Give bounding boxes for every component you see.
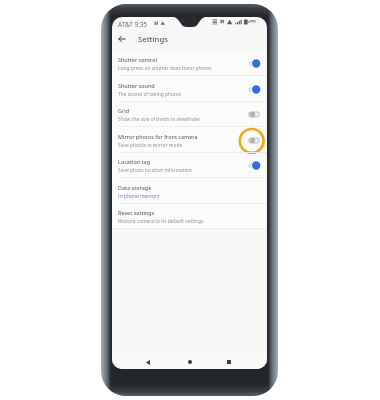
button[interactable]: Switch on (248, 161, 260, 170)
staticText: Settings (138, 34, 168, 44)
button[interactable]: Data storage (112, 178, 267, 204)
button[interactable]: Switch off (248, 110, 260, 119)
button[interactable]: Switch on (248, 85, 260, 94)
button[interactable]: Grid (112, 101, 267, 127)
button[interactable]: Switch on (248, 59, 260, 68)
button[interactable]: Back (139, 356, 157, 368)
staticText: Shutter control (118, 56, 157, 63)
staticText: The sound of taking photos (118, 91, 182, 98)
button[interactable]: Switch off (248, 136, 260, 145)
button[interactable]: Location tag (112, 152, 267, 178)
button[interactable]: Recent apps (220, 356, 238, 368)
staticText: Show the size of thirds in viewfinder (118, 116, 201, 123)
staticText: Reset settings (118, 209, 155, 216)
staticText: AT&T 9:35 (118, 20, 148, 29)
button[interactable]: Back (114, 28, 129, 50)
staticText: Save photos in mirror mode (118, 142, 183, 149)
staticText: Grid (118, 107, 129, 114)
staticText: In phone memory (118, 193, 160, 200)
staticText: Shutter sound (118, 82, 155, 89)
staticText: Restore camera to its default settings (118, 218, 204, 225)
staticText: Save photo location information (118, 167, 192, 174)
button[interactable]: Reset settings (112, 203, 267, 229)
button[interactable]: Mirror photos for front camera (112, 127, 267, 153)
staticText: Location tag (118, 158, 150, 165)
staticText: Mirror photos for front camera (118, 133, 198, 140)
button[interactable]: Home (181, 356, 199, 368)
staticText: Data storage (118, 184, 152, 191)
button[interactable]: Shutter sound (112, 76, 267, 102)
staticText: Long press on shutter does burst photos (118, 65, 212, 72)
button[interactable]: Shutter control (112, 50, 267, 76)
